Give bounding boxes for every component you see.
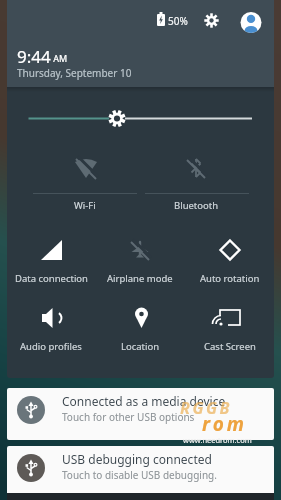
- button[interactable]: [100, 301, 180, 353]
- button[interactable]: [30, 148, 140, 210]
- staticText: Airplane mode: [107, 272, 173, 285]
- button[interactable]: Connected as a media device: [7, 388, 274, 440]
- button[interactable]: [190, 301, 270, 353]
- button[interactable]: [150, 5, 270, 41]
- staticText: Bluetooth: [174, 199, 219, 212]
- button[interactable]: [141, 148, 251, 210]
- staticText: AM: [51, 52, 68, 64]
- staticText: Touch to disable USB debugging.: [62, 468, 217, 482]
- button[interactable]: [11, 301, 91, 353]
- staticText: Data connection: [15, 272, 88, 285]
- staticText: Connected as a media device: [62, 393, 226, 409]
- staticText: Audio profiles: [20, 340, 82, 353]
- staticText: www.needrom.com: [183, 435, 252, 445]
- staticText: RGGB: [180, 397, 232, 419]
- button[interactable]: [190, 233, 270, 285]
- staticText: Thursday, September 10: [17, 66, 132, 80]
- staticText: 9:44: [17, 45, 51, 68]
- staticText: Cast Screen: [204, 340, 256, 353]
- button[interactable]: [100, 233, 180, 285]
- staticText: rom: [202, 411, 247, 437]
- staticText: Location: [121, 340, 160, 353]
- button[interactable]: USB debugging connected: [7, 446, 274, 498]
- staticText: USB debugging connected: [62, 451, 212, 467]
- staticText: Touch for other USB options: [62, 410, 195, 424]
- staticText: Wi-Fi: [74, 199, 96, 212]
- button[interactable]: [11, 233, 91, 285]
- staticText: Auto rotation: [200, 272, 260, 285]
- staticText: 50%: [168, 14, 188, 28]
- button[interactable]: [7, 104, 274, 136]
